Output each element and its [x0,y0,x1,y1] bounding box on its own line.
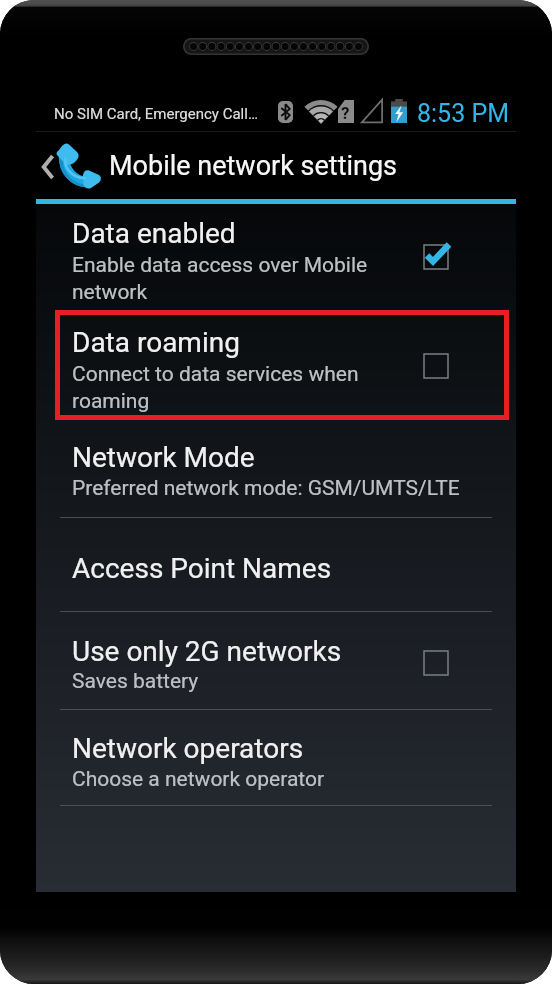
staticText: Use only 2G networks [72,635,342,668]
button[interactable]: Unchecked [408,635,464,691]
staticText: Data roaming [72,326,240,359]
staticText: ? [341,103,350,123]
button[interactable]: Unchecked [408,338,464,394]
staticText: Saves battery [72,669,199,694]
button[interactable] [36,612,516,709]
staticText: Access Point Names [72,552,332,585]
button[interactable]: Checked [408,229,464,285]
staticText: Network Mode [72,441,255,474]
button[interactable]: Navigate up, Mobile network settings [36,132,516,199]
staticText: Data enabled [72,217,236,250]
button[interactable] [36,710,516,805]
staticText: Mobile network settings [109,150,398,182]
staticText: Enable data access over Mobile network [72,253,368,304]
staticText: No SIM Card, Emergency Call… [54,105,258,123]
button[interactable] [36,310,516,420]
button[interactable] [36,518,516,611]
staticText: Choose a network operator [72,767,325,792]
button[interactable] [36,204,516,310]
staticText: Preferred network mode: GSM/UMTS/LTE [72,476,460,501]
button[interactable] [36,420,516,517]
staticText: Network operators [72,732,304,765]
staticText: Connect to data services when roaming [72,362,359,413]
staticText: 8:53 PM [417,99,510,128]
